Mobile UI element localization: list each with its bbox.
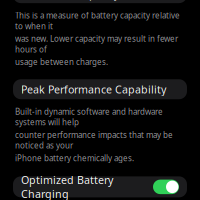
staticText: Built-in dynamic software and hardware s… [15, 106, 163, 127]
staticText: iPhone battery chemically ages. [15, 153, 134, 163]
staticText: This is a measure of battery capacity re… [15, 10, 180, 31]
button[interactable]: Peak Performance Capability [13, 79, 187, 99]
staticText: usage between charges. [15, 57, 108, 67]
button[interactable]: Maximum Capacity [13, 0, 187, 3]
staticText: counter performance impacts that may be … [15, 129, 173, 151]
staticText: Optimized Battery Charging [21, 173, 113, 200]
staticText: was new. Lower capacity may result in fe… [15, 33, 178, 55]
staticText: Peak Performance Capability [21, 82, 166, 96]
button[interactable]: Optimized Battery Charging [13, 176, 187, 197]
staticText: Maximum Capacity [21, 0, 119, 1]
